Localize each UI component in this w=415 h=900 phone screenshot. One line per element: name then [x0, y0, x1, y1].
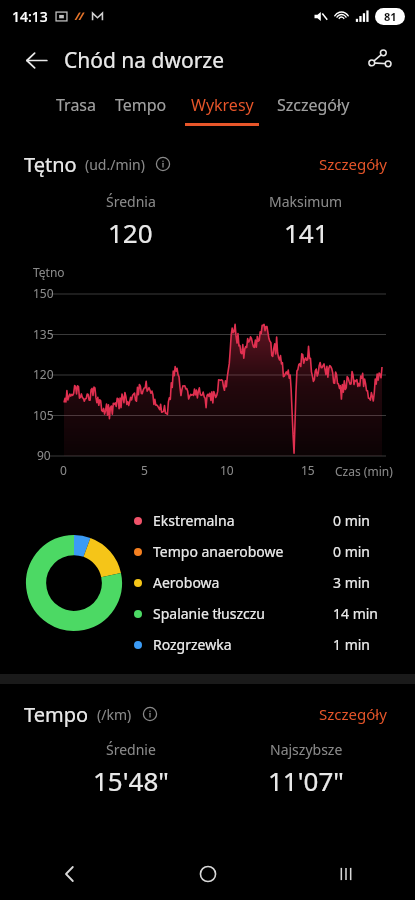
button[interactable]: Trasa: [56, 88, 97, 132]
button[interactable]: Back: [0, 848, 139, 900]
staticText: 1 min: [333, 635, 371, 654]
staticText: (ud./min): [85, 155, 145, 174]
button[interactable]: Home: [139, 848, 277, 900]
staticText: 120: [33, 366, 54, 382]
staticText: Chód na dworze: [64, 46, 225, 75]
staticText: Tempo: [24, 701, 89, 728]
staticText: Rozgrzewka: [153, 635, 232, 654]
staticText: (/km): [97, 705, 132, 724]
staticText: Średnia: [106, 192, 156, 211]
staticText: Ekstremalna: [153, 511, 235, 530]
staticText: Spalanie tłuszczu: [153, 604, 265, 623]
staticText: Średnie: [106, 740, 156, 759]
button[interactable]: Share: [357, 38, 401, 82]
button[interactable]: Szczegóły: [315, 150, 391, 178]
staticText: 5: [141, 462, 148, 478]
staticText: Szczegóły: [319, 704, 387, 724]
staticText: 0 min: [333, 542, 371, 561]
staticText: 81: [384, 9, 397, 24]
staticText: 3 min: [333, 573, 371, 592]
staticText: 0: [60, 462, 67, 478]
staticText: Najszybsze: [270, 740, 343, 759]
staticText: Trasa: [56, 94, 97, 116]
staticText: 11'07": [268, 763, 344, 798]
staticText: 120: [108, 215, 153, 250]
button[interactable]: Recent apps: [277, 848, 415, 900]
staticText: 10: [220, 462, 234, 478]
staticText: 14 min: [333, 604, 379, 623]
button[interactable]: Info: [139, 703, 161, 725]
button[interactable]: Szczegóły: [315, 700, 391, 728]
staticText: Wykresy: [191, 94, 254, 116]
staticText: 15'48": [93, 763, 169, 798]
staticText: 135: [33, 326, 54, 342]
staticText: 15: [301, 462, 315, 478]
staticText: 141: [284, 215, 329, 250]
staticText: Tętno: [33, 264, 65, 280]
staticText: Czas (min): [335, 463, 393, 479]
staticText: Tętno: [24, 151, 77, 178]
staticText: 90: [37, 447, 51, 463]
staticText: Szczegóły: [319, 154, 387, 174]
button[interactable]: Wykresy: [185, 88, 259, 132]
staticText: 14:13: [12, 7, 48, 26]
staticText: Aerobowa: [153, 573, 220, 592]
staticText: Maksimum: [269, 192, 343, 211]
staticText: 105: [33, 407, 54, 423]
staticText: Szczegóły: [277, 94, 350, 116]
staticText: 150: [33, 285, 54, 301]
staticText: Tempo anaerobowe: [153, 542, 284, 561]
staticText: 0 min: [333, 511, 371, 530]
button[interactable]: Tempo: [115, 88, 167, 132]
button[interactable]: Szczegóły: [277, 88, 350, 132]
button[interactable]: Back: [14, 38, 58, 82]
staticText: Tempo: [115, 94, 167, 116]
button[interactable]: Info: [152, 153, 174, 175]
